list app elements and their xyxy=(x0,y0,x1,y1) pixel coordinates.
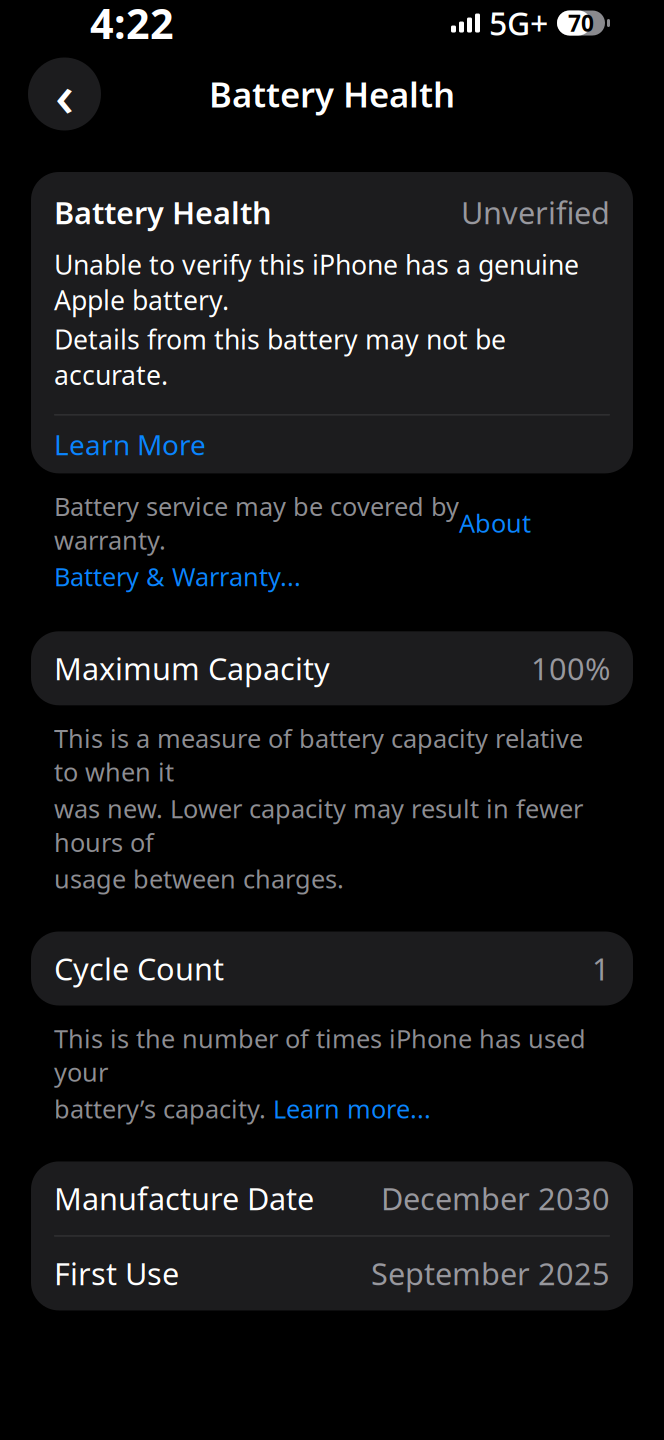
staticText: 5G+ xyxy=(489,2,548,44)
button[interactable]: Back xyxy=(28,57,101,130)
staticText: 4:22 xyxy=(90,0,174,50)
staticText: Learn more... xyxy=(273,1092,431,1125)
staticText: Battery service may be covered by warran… xyxy=(54,489,459,557)
staticText: 70 xyxy=(568,8,594,38)
staticText: Unable to verify this iPhone has a genui… xyxy=(54,247,579,317)
staticText: Maximum Capacity xyxy=(54,648,330,689)
staticText: This is a measure of battery capacity re… xyxy=(54,721,583,789)
staticText: Manufacture Date xyxy=(54,1178,314,1219)
staticText: Battery Health xyxy=(209,71,455,117)
button[interactable]: Maximum Capacity xyxy=(31,631,633,705)
staticText: September 2025 xyxy=(371,1253,610,1294)
staticText: Details from this battery may not be acc… xyxy=(54,322,506,392)
staticText: Learn More xyxy=(54,426,206,463)
button[interactable]: Cycle Count xyxy=(31,931,633,1005)
staticText: First Use xyxy=(54,1253,179,1294)
staticText: Unverified xyxy=(461,192,610,233)
staticText: usage between charges. xyxy=(54,862,344,895)
staticText: battery’s capacity. xyxy=(54,1092,273,1125)
staticText: Cycle Count xyxy=(54,948,224,989)
staticText: About xyxy=(459,506,531,540)
staticText: This is the number of times iPhone has u… xyxy=(54,1021,586,1089)
staticText: Battery & Warranty... xyxy=(54,560,301,593)
button[interactable]: Learn More xyxy=(31,415,633,473)
staticText: Battery Health xyxy=(54,192,272,233)
staticText: December 2030 xyxy=(381,1178,610,1219)
staticText: 1 xyxy=(592,948,610,989)
button[interactable]: Manufacture Date xyxy=(31,1161,633,1235)
staticText: ‹ xyxy=(55,55,74,133)
staticText: 100% xyxy=(531,648,610,689)
staticText: was new. Lower capacity may result in fe… xyxy=(54,792,583,859)
button[interactable]: First Use xyxy=(31,1236,633,1310)
